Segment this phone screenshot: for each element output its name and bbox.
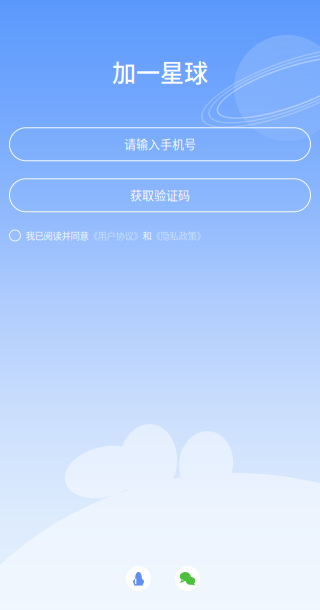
button[interactable]: 《隐私政策》 <box>151 229 205 242</box>
staticText: 《用户协议》 <box>88 229 142 242</box>
button[interactable]: 同意用户协议 <box>9 230 25 241</box>
button[interactable]: QQ 登录 <box>126 566 151 591</box>
staticText: 《隐私政策》 <box>151 229 205 242</box>
staticText: 加一星球 <box>112 54 208 89</box>
button[interactable]: 《用户协议》 <box>88 229 142 242</box>
button[interactable]: 微信登录 <box>175 566 200 591</box>
staticText: 请输入手机号 <box>124 136 196 153</box>
staticText: 和 <box>142 229 151 242</box>
staticText: 获取验证码 <box>130 187 190 204</box>
button[interactable]: 获取验证码 <box>9 179 310 212</box>
button[interactable]: 请输入手机号 <box>9 128 310 161</box>
staticText: 我已阅读并同意 <box>25 229 88 242</box>
